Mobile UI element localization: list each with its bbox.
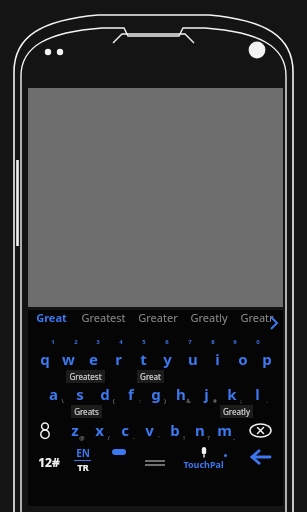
staticText: - [133,434,135,442]
staticText: TouchPal [183,458,224,470]
button[interactable]: Space [138,457,172,469]
button[interactable]: u [181,348,204,370]
staticText: : [139,397,141,405]
button[interactable]: Backspace [237,418,283,442]
button[interactable]: Greatly [190,310,228,325]
staticText: w [62,349,75,369]
staticText: c [121,420,129,440]
staticText: 4 [119,338,123,346]
staticText: 2 [74,338,78,346]
staticText: n [195,420,205,440]
button[interactable]: 12# [38,454,60,470]
button[interactable]: q [33,348,56,370]
staticText: \ [61,397,64,405]
button[interactable]: Greatly [216,405,256,418]
staticText: o [238,349,248,369]
button[interactable]: a [42,383,65,405]
button[interactable]: o [231,348,254,370]
button[interactable]: Greatest [62,370,108,383]
button[interactable]: h [169,383,192,405]
staticText: m [217,420,232,440]
button[interactable]: Greatr [240,310,274,325]
staticText: 0 [256,338,260,346]
staticText: k [227,384,237,404]
staticText: 9 [233,338,237,346]
staticText: Great [140,371,161,382]
staticText: Greatly [223,406,250,417]
button[interactable]: x [87,418,112,442]
button[interactable]: Switch language [74,446,91,473]
staticText: @ [79,434,85,442]
staticText: Greatest [81,310,126,325]
staticText: z [71,420,79,440]
button[interactable]: k [220,383,243,405]
button[interactable]: l [246,383,269,405]
button[interactable]: m [212,418,237,442]
staticText: f [128,384,134,404]
button[interactable]: c [112,418,137,442]
staticText: u [188,349,198,369]
staticText: Greater [138,310,178,325]
staticText: s [76,384,84,404]
staticText: 8 [211,338,215,346]
button[interactable]: Greats [68,405,104,418]
button[interactable]: j [195,383,218,405]
button[interactable]: More suggestions [265,314,283,332]
staticText: 12# [38,454,60,470]
staticText: Greatly [190,310,228,325]
button[interactable]: f [119,383,142,405]
button[interactable]: z [62,418,87,442]
button[interactable]: v [137,418,162,442]
button[interactable]: g [144,383,167,405]
staticText: r [115,349,122,369]
staticText: Greats [74,406,99,417]
button[interactable]: Greater [138,310,178,325]
staticText: Greatr [240,310,274,325]
staticText: Greatest [69,371,102,382]
staticText: q [40,349,50,369]
staticText: ! [183,434,185,442]
staticText: & [186,397,191,405]
button[interactable]: t [132,348,155,370]
staticText: t [140,349,147,369]
button[interactable]: Shift [28,418,62,442]
button[interactable]: Great [36,310,67,325]
staticText: # [213,397,217,405]
button[interactable]: Enter [247,444,273,470]
button[interactable]: d [93,383,116,405]
button[interactable]: Toggle [112,449,126,455]
staticText: / [107,434,110,442]
button[interactable]: w [57,348,80,370]
staticText: j [204,384,209,404]
button[interactable]: i [206,348,229,370]
button[interactable]: b [162,418,187,442]
button[interactable]: y [156,348,179,370]
staticText: ? [207,434,210,442]
staticText: 6 [165,338,169,346]
button[interactable]: Voice input [183,446,224,470]
button[interactable]: Great [134,370,167,383]
staticText: 3 [96,338,100,346]
staticText: l [255,384,260,404]
staticText: h [176,384,186,404]
staticText: EN [76,446,90,460]
staticText: ' [158,434,160,442]
staticText: b [170,420,180,440]
button[interactable]: Greatest [81,310,126,325]
staticText: i [215,349,220,369]
button[interactable]: s [68,383,91,405]
staticText: Great [36,310,67,325]
button[interactable]: r [107,348,130,370]
staticText: p [262,349,272,369]
staticText: e [89,349,98,369]
button[interactable]: n [187,418,212,442]
staticText: v [145,420,154,440]
staticText: g [151,384,161,404]
button[interactable]: e [82,348,105,370]
staticText: ) [164,397,166,405]
staticText: y [163,349,172,369]
staticText: d [100,384,110,404]
staticText: 5 [142,338,146,346]
staticText: ; [240,397,242,405]
button[interactable]: p [255,348,278,370]
